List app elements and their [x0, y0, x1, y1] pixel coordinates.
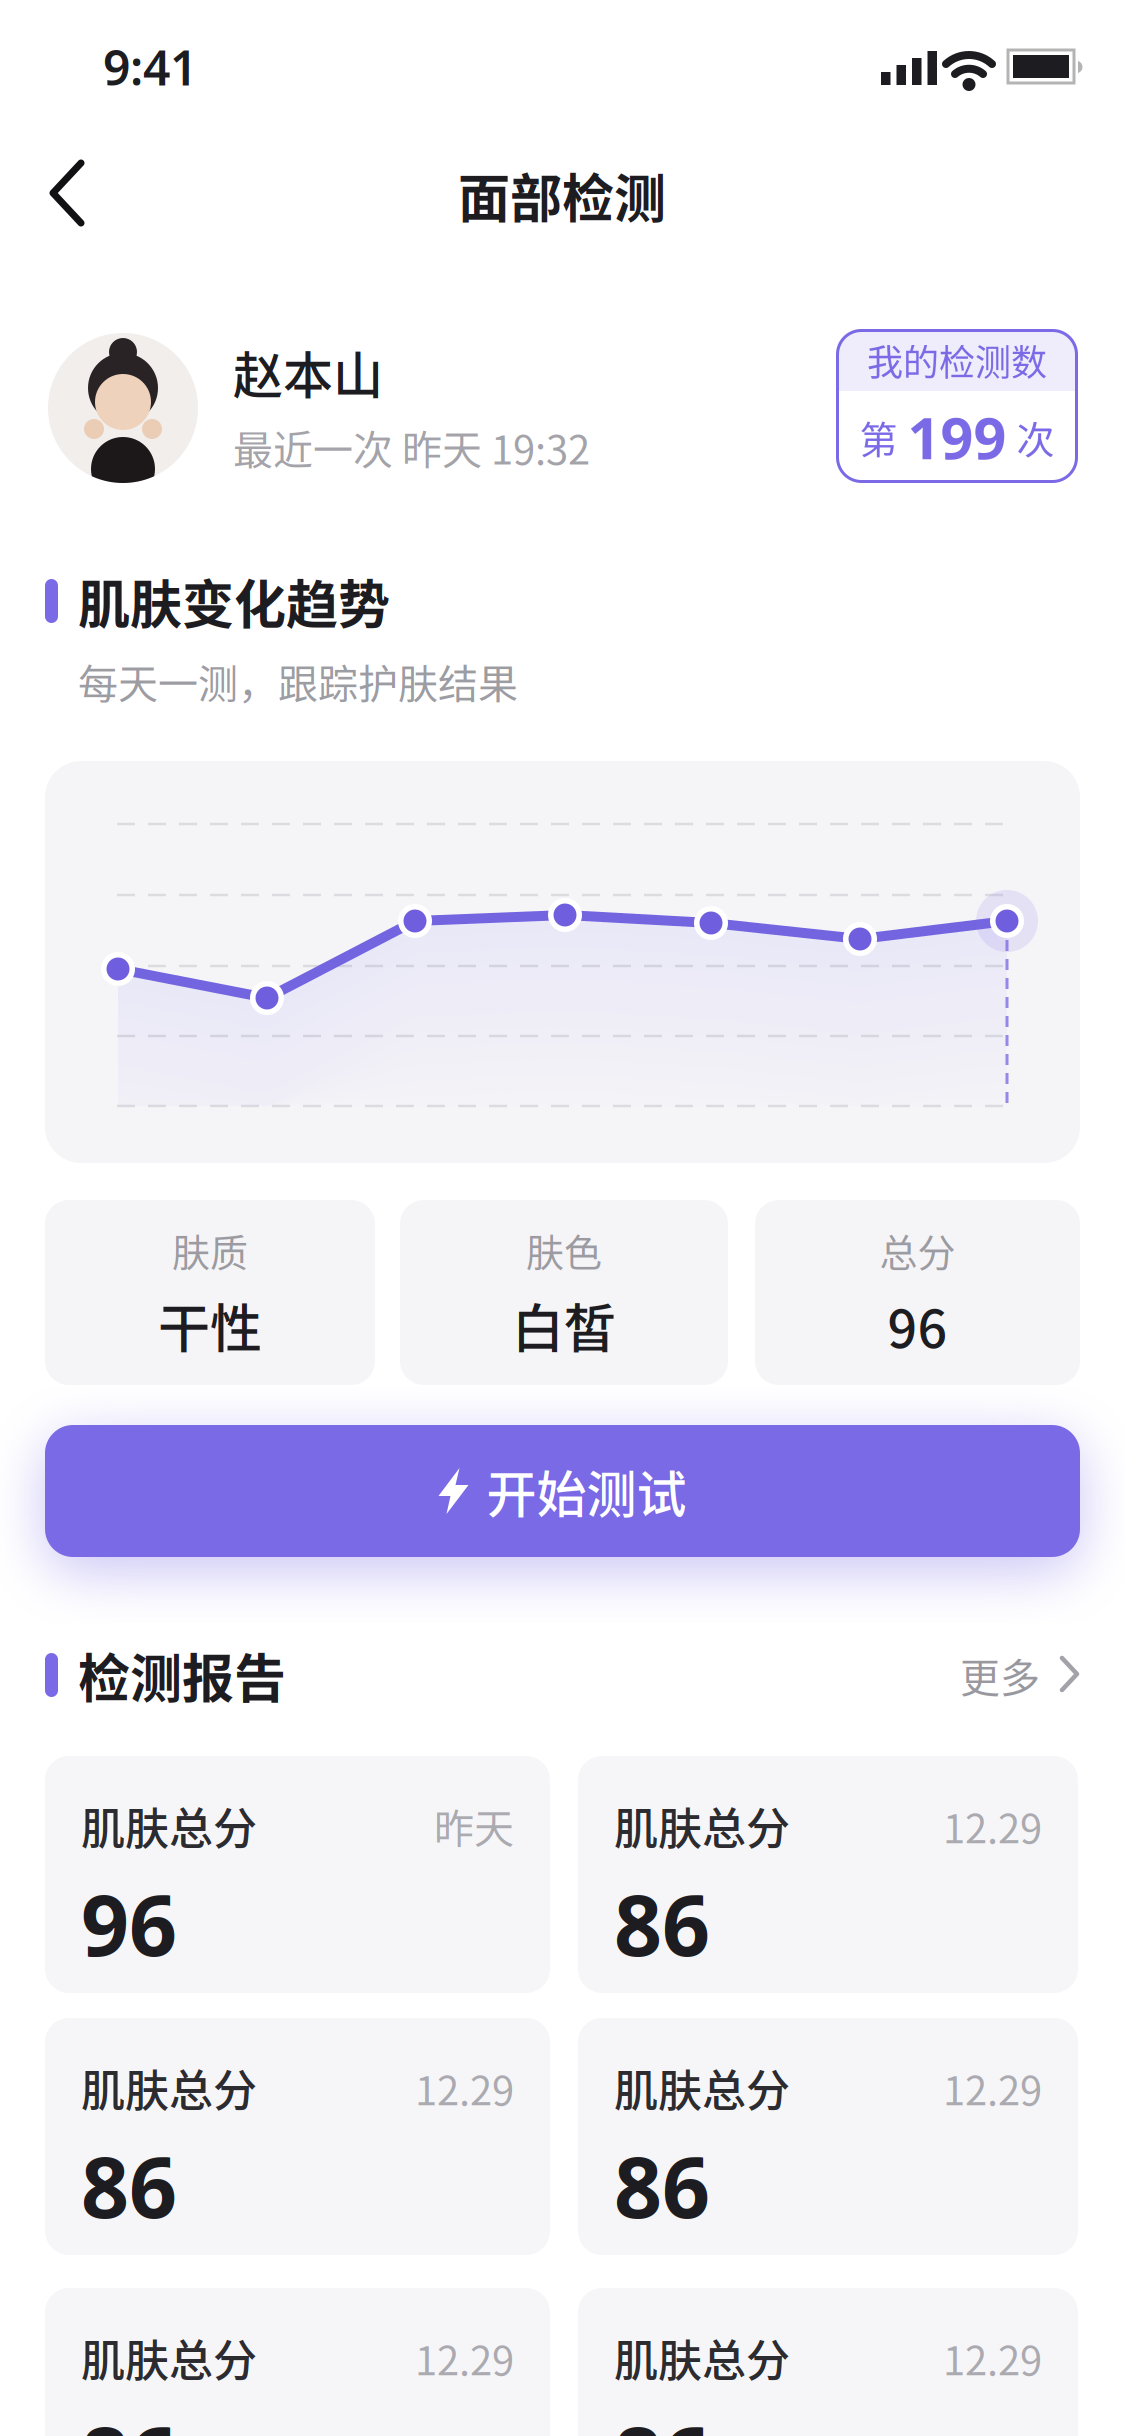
staticText: 最近一次 昨天 19:32 — [233, 418, 590, 476]
staticText: 86 — [81, 2400, 177, 2436]
staticText: 肌肤总分 — [614, 1794, 790, 1858]
staticText: 96 — [81, 1868, 177, 1979]
staticText: 肌肤总分 — [614, 2326, 790, 2390]
staticText: 肤色 — [526, 1222, 602, 1277]
staticText: 86 — [614, 2400, 710, 2436]
staticText: 199 — [907, 399, 1006, 475]
button[interactable]: 肌肤总分 — [45, 2018, 550, 2255]
button[interactable]: 我的检测数 — [836, 329, 1078, 483]
button[interactable]: 肌肤总分 — [45, 2288, 550, 2436]
staticText: 肌肤总分 — [81, 2056, 257, 2120]
staticText: 肌肤总分 — [81, 1794, 257, 1858]
staticText: 12.29 — [943, 2329, 1042, 2387]
button[interactable]: 肌肤总分 — [578, 1756, 1078, 1993]
staticText: 第 — [859, 409, 897, 464]
staticText: 总分 — [879, 1222, 955, 1277]
staticText: 昨天 — [434, 1797, 514, 1855]
button[interactable]: 开始测试 — [45, 1425, 1080, 1557]
button[interactable]: 肌肤总分 — [578, 2288, 1078, 2436]
button[interactable]: Back — [22, 138, 112, 248]
staticText: 86 — [81, 2130, 177, 2241]
staticText: 12.29 — [943, 2059, 1042, 2117]
staticText: 12.29 — [415, 2329, 514, 2387]
staticText: 更多 — [960, 1646, 1040, 1704]
button[interactable]: 肌肤总分 — [578, 2018, 1078, 2255]
staticText: 12.29 — [943, 1797, 1042, 1855]
staticText: 面部检测 — [458, 157, 666, 233]
staticText: 86 — [614, 1868, 710, 1979]
staticText: 肌肤变化趋势 — [78, 563, 390, 639]
staticText: 干性 — [158, 1287, 262, 1363]
staticText: 赵本山 — [233, 336, 383, 408]
staticText: 我的检测数 — [867, 334, 1047, 386]
button[interactable]: 更多 — [860, 1640, 1080, 1710]
staticText: 96 — [887, 1287, 947, 1363]
staticText: 检测报告 — [78, 1637, 286, 1713]
staticText: 白皙 — [512, 1287, 616, 1363]
button[interactable]: 肌肤总分 — [45, 1756, 550, 1993]
staticText: 86 — [614, 2130, 710, 2241]
staticText: 每天一测，跟踪护肤结果 — [78, 652, 518, 710]
staticText: 肌肤总分 — [81, 2326, 257, 2390]
staticText: 开始测试 — [486, 1455, 686, 1527]
staticText: 12.29 — [415, 2059, 514, 2117]
staticText: 9:41 — [103, 35, 197, 99]
staticText: 肤质 — [172, 1222, 248, 1277]
staticText: 肌肤总分 — [614, 2056, 790, 2120]
staticText: 次 — [1016, 409, 1054, 464]
